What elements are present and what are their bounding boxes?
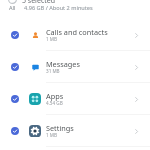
other: Open details (133, 32, 140, 39)
button[interactable]: Calls and contacts (0, 19, 150, 51)
staticText: Settings (46, 123, 74, 133)
button[interactable]: Apps (0, 83, 150, 115)
staticText: Messages (46, 59, 80, 69)
staticText: All (9, 4, 16, 12)
other: Open details (133, 64, 140, 71)
staticText: 5 selected (22, 0, 56, 6)
other: Open details (133, 128, 140, 135)
staticText: Calls and contacts (46, 27, 108, 37)
other: Open details (133, 96, 140, 103)
staticText: Apps (46, 91, 64, 101)
staticText: 31 MB (46, 68, 60, 74)
button[interactable]: Settings (0, 115, 150, 147)
staticText: 1 MB (46, 36, 57, 42)
button[interactable]: Messages (0, 51, 150, 83)
staticText: 1 MB (46, 132, 57, 138)
staticText: 4.54 GB (46, 100, 63, 106)
staticText: 4.96 GB / About 2 minutes (24, 4, 93, 12)
